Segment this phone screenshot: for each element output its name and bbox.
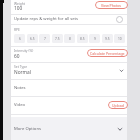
button[interactable]: 10 <box>114 34 125 43</box>
button[interactable]: Notes <box>11 79 127 96</box>
button[interactable]: 9 <box>89 34 100 43</box>
staticText: View Photos <box>101 3 122 8</box>
staticText: More Options <box>14 126 41 132</box>
button[interactable]: 7 <box>39 34 50 43</box>
button[interactable]: 6 <box>14 34 25 43</box>
button[interactable]: 7.5 <box>52 34 63 43</box>
button[interactable]: 6.5 <box>27 34 38 43</box>
staticText: RPE <box>14 27 20 31</box>
staticText: 60 <box>14 53 20 60</box>
button[interactable]: More Options <box>11 117 127 140</box>
staticText: Set Type <box>14 64 28 68</box>
staticText: Calculate Percentage <box>90 51 125 56</box>
staticText: Weight <box>14 1 25 5</box>
staticText: Notes <box>14 85 26 91</box>
staticText: Video <box>14 102 26 108</box>
staticText: 7.5 <box>55 37 60 41</box>
staticText: 9.5 <box>105 37 110 41</box>
staticText: 100 <box>14 5 23 12</box>
button[interactable]: 8.5 <box>77 34 88 43</box>
button[interactable]: View Photos <box>95 1 128 9</box>
staticText: Update reps & weight for all sets <box>14 16 79 22</box>
staticText: Intensity (%) <box>14 48 34 52</box>
button[interactable]: Upload <box>108 101 128 109</box>
button[interactable]: Change set type <box>116 65 126 75</box>
staticText: 7 <box>44 37 46 41</box>
staticText: Normal <box>14 69 31 76</box>
staticText: 8 <box>69 37 71 41</box>
staticText: 6 <box>19 37 21 41</box>
staticText: 8.5 <box>80 37 85 41</box>
button[interactable]: Calculate Percentage <box>87 49 128 57</box>
staticText: 9 <box>94 37 96 41</box>
button[interactable]: 9.5 <box>102 34 113 43</box>
staticText: 10 <box>118 37 122 41</box>
button[interactable]: 8 <box>64 34 75 43</box>
button[interactable]: Update reps & weight for all sets <box>11 14 127 24</box>
staticText: Upload <box>112 103 124 108</box>
staticText: 6.5 <box>30 37 35 41</box>
